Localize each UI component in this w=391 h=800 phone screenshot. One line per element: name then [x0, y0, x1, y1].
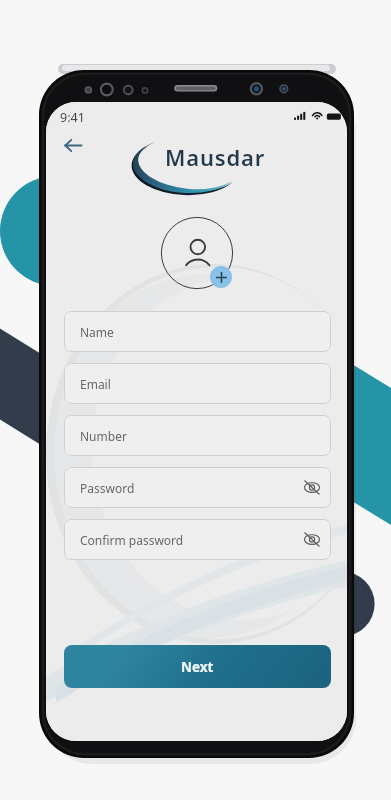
staticText: Password [80, 480, 135, 496]
button[interactable]: Number [64, 415, 331, 456]
staticText: Name [80, 324, 114, 340]
button[interactable]: Add photo [210, 266, 232, 288]
button[interactable]: Email [64, 363, 331, 404]
button[interactable]: Back [59, 131, 87, 159]
button[interactable]: Password [64, 467, 331, 508]
staticText: Email [80, 376, 111, 392]
staticText: 9:41 [60, 109, 85, 126]
staticText: Next [181, 658, 214, 676]
staticText: Mausdar [165, 142, 265, 172]
staticText: Confirm password [80, 532, 184, 548]
button[interactable]: Confirm password [64, 519, 331, 560]
button[interactable]: Next [64, 645, 331, 688]
staticText: Number [80, 428, 127, 444]
button[interactable]: Name [64, 311, 331, 352]
